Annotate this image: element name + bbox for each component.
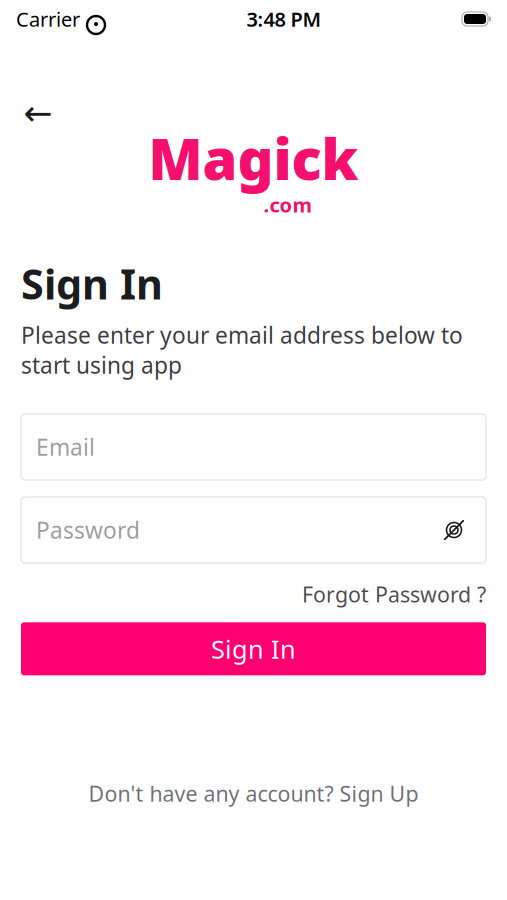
staticText: Sign In (211, 632, 296, 666)
staticText: Please enter your email address below to… (21, 320, 463, 380)
staticText: Email (36, 432, 95, 462)
staticText: 3:48 PM (246, 6, 321, 32)
button[interactable]: Don't have any account? Sign Up (21, 769, 486, 818)
staticText: Sign In (21, 256, 163, 311)
button[interactable]: Forgot Password ? (302, 580, 486, 608)
staticText: Forgot Password ? (302, 580, 486, 608)
button[interactable]: Sign In (21, 622, 486, 675)
staticText: ← (23, 93, 52, 133)
staticText: Magick (148, 121, 358, 195)
staticText: Password (36, 515, 140, 545)
staticText: Carrier (16, 6, 80, 32)
staticText: .com (263, 191, 312, 218)
button[interactable]: Back (16, 91, 60, 135)
button[interactable]: Show password (437, 513, 471, 547)
staticText: Don't have any account? Sign Up (88, 779, 418, 808)
